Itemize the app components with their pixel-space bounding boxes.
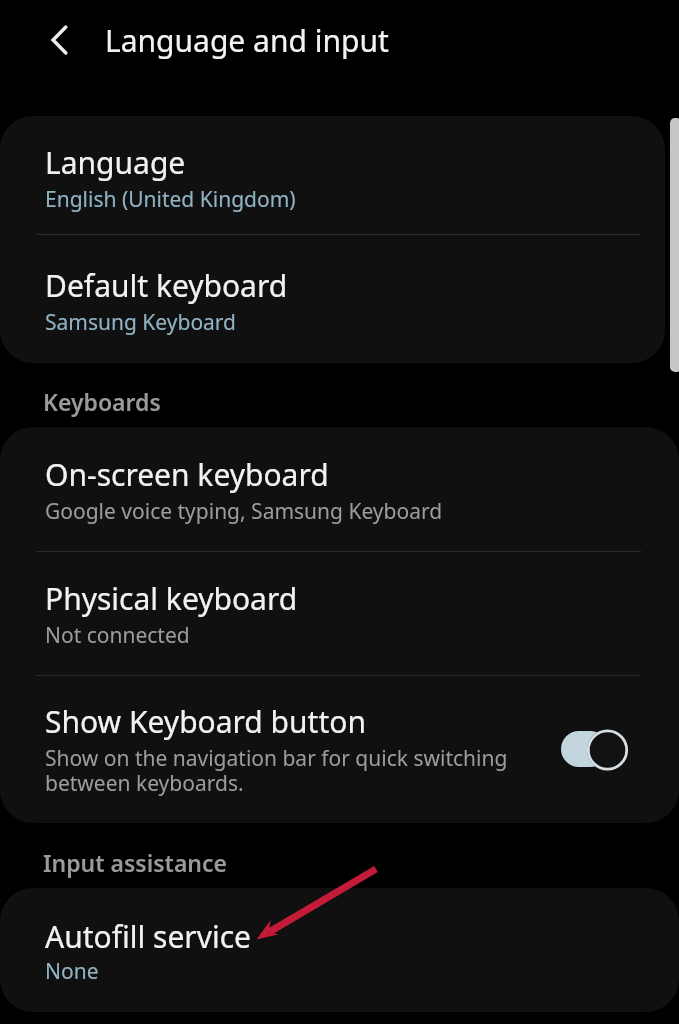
- staticText: Samsung Keyboard: [45, 308, 237, 337]
- staticText: Not connected: [45, 621, 190, 650]
- button[interactable]: Show Keyboard button: [0, 675, 679, 823]
- staticText: On-screen keyboard: [45, 454, 329, 495]
- staticText: Show on the navigation bar for quick swi…: [45, 744, 525, 797]
- staticText: Physical keyboard: [45, 578, 298, 619]
- staticText: English (United Kingdom): [45, 185, 296, 214]
- staticText: Language: [45, 142, 186, 183]
- button[interactable]: Show Keyboard button toggle: [553, 719, 637, 779]
- button[interactable]: Language: [0, 116, 665, 234]
- button[interactable]: On-screen keyboard: [0, 427, 679, 551]
- button[interactable]: Default keyboard: [0, 234, 665, 363]
- button[interactable]: Autofill service: [0, 888, 679, 1012]
- staticText: Google voice typing, Samsung Keyboard: [45, 497, 443, 526]
- button[interactable]: Back: [29, 11, 87, 69]
- staticText: Autofill service: [45, 916, 252, 957]
- staticText: Show Keyboard button: [45, 701, 366, 742]
- staticText: None: [45, 957, 99, 986]
- button[interactable]: Physical keyboard: [0, 551, 679, 675]
- staticText: Default keyboard: [45, 265, 288, 306]
- staticText: Language and input: [105, 20, 389, 61]
- staticText: Input assistance: [43, 847, 228, 878]
- staticText: Keyboards: [43, 386, 161, 417]
